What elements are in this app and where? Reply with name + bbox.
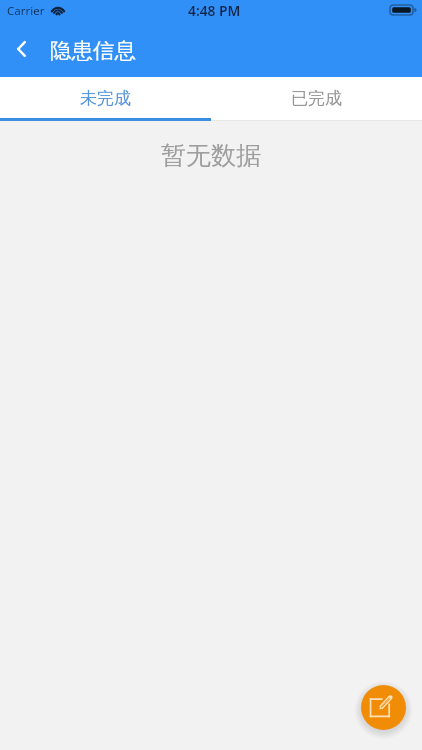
button[interactable]: Add record <box>361 685 406 730</box>
staticText: Carrier <box>7 3 45 19</box>
staticText: 未完成 <box>80 88 131 109</box>
button[interactable]: Back <box>0 28 42 72</box>
staticText: 暂无数据 <box>161 140 261 171</box>
button[interactable]: 已完成 <box>211 77 422 121</box>
staticText: 已完成 <box>291 88 342 109</box>
staticText: 4:48 PM <box>188 1 241 20</box>
staticText: 隐患信息 <box>50 37 136 64</box>
button[interactable]: 未完成 <box>0 77 211 121</box>
